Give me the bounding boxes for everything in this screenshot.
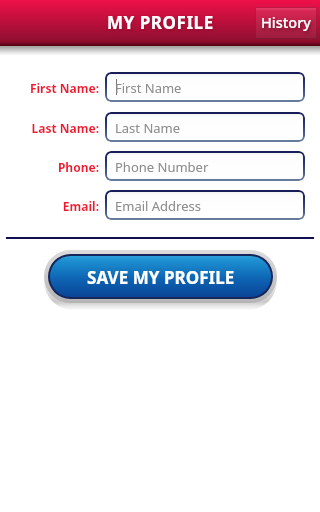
button[interactable]: Phone Number: [105, 151, 305, 181]
staticText: Email:: [62, 198, 99, 214]
staticText: Last Name: [115, 119, 181, 137]
button[interactable]: History: [256, 8, 316, 38]
staticText: Phone Number: [115, 158, 209, 176]
button[interactable]: SAVE MY PROFILE: [50, 256, 271, 297]
staticText: First Name:: [29, 80, 99, 96]
staticText: Phone:: [57, 159, 99, 175]
staticText: Email Address: [115, 197, 201, 215]
staticText: SAVE MY PROFILE: [87, 266, 235, 289]
staticText: First Name: [115, 79, 182, 97]
button[interactable]: First Name: [105, 72, 305, 102]
button[interactable]: Email Address: [105, 190, 305, 220]
staticText: MY PROFILE: [107, 11, 214, 34]
staticText: Last Name:: [31, 120, 99, 136]
staticText: History: [261, 12, 312, 32]
button[interactable]: Last Name: [105, 112, 305, 142]
